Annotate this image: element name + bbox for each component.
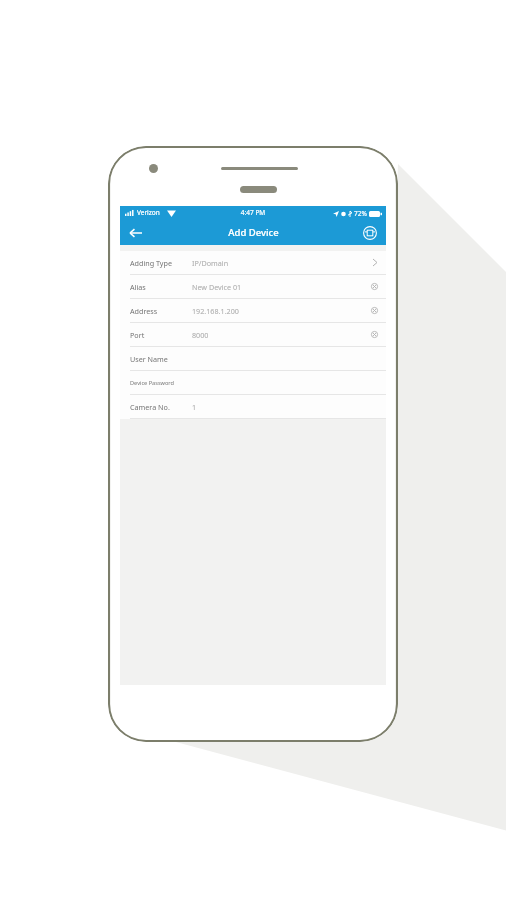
staticText: Verizon bbox=[137, 208, 160, 217]
button[interactable]: Back bbox=[125, 223, 145, 243]
staticText: Camera No. bbox=[130, 402, 170, 412]
staticText: Alias bbox=[130, 282, 146, 292]
staticText: 192.168.1.200 bbox=[192, 306, 239, 316]
staticText: IP/Domain bbox=[192, 258, 229, 268]
button[interactable]: Camera No. bbox=[120, 395, 386, 419]
button[interactable]: User Name bbox=[120, 347, 386, 371]
button[interactable]: Alias bbox=[120, 275, 386, 299]
staticText: 4:47 PM bbox=[120, 208, 386, 217]
staticText: New Device 01 bbox=[192, 282, 242, 292]
button[interactable]: Adding Type bbox=[120, 251, 386, 275]
staticText: Address bbox=[130, 306, 158, 316]
staticText: Device Password bbox=[130, 379, 175, 387]
button[interactable]: Scan QR code bbox=[360, 223, 380, 243]
staticText: User Name bbox=[130, 354, 168, 364]
staticText: Adding Type bbox=[130, 258, 173, 268]
staticText: 72% bbox=[354, 209, 367, 218]
button[interactable]: Port bbox=[120, 323, 386, 347]
button[interactable]: Device Password bbox=[120, 371, 386, 395]
staticText: 8000 bbox=[192, 330, 209, 340]
button[interactable]: Address bbox=[120, 299, 386, 323]
staticText: Add Device bbox=[228, 226, 279, 239]
staticText: 1 bbox=[192, 402, 197, 412]
staticText: Port bbox=[130, 330, 145, 340]
